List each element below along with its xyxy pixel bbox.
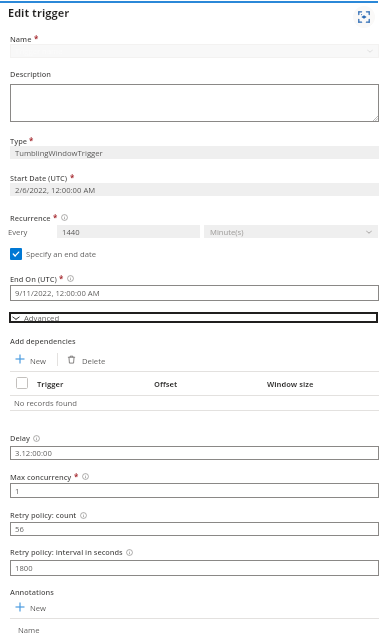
button[interactable]: Advanced [9,312,378,323]
staticText: Delay [10,433,30,443]
staticText: Trigger [37,379,64,389]
staticText: Start Date (UTC) [10,173,68,183]
button[interactable]: New dependency [13,351,47,368]
staticText: * [68,172,75,183]
staticText: * [32,33,39,44]
staticText: 1800 [15,563,33,573]
button[interactable]: 56 [10,522,379,536]
staticText: Type [10,136,27,146]
button[interactable]: 1440 [57,225,200,238]
staticText: TumblingWindowTrigger [15,148,103,158]
staticText: No records found [14,398,78,408]
staticText: Edit trigger [8,5,70,20]
staticText: 56 [15,524,24,534]
staticText: 3.12:00:00 [15,448,52,458]
button[interactable]: 3.12:00:00 [10,446,379,460]
staticText: * [51,212,58,223]
button[interactable]: Specify an end date [10,248,97,260]
button[interactable]: Minute(s) [204,225,378,238]
staticText: Description [10,69,51,79]
staticText: * [72,471,79,482]
button[interactable]: Delete dependency [65,351,110,368]
staticText: Recurrence [10,213,51,223]
staticText: 1 [15,486,20,496]
button[interactable]: 2/6/2022, 12:00:00 AM [10,183,379,196]
staticText: Offset [154,379,178,389]
staticText: 9/11/2022, 12:00:00 AM [15,288,100,298]
staticText: Max concurrency [10,472,72,482]
staticText: * [27,135,34,146]
staticText: 2/6/2022, 12:00:00 AM [15,185,96,195]
staticText: Delete [82,356,106,364]
staticText: Advanced [24,313,60,323]
staticText: Add dependencies [10,336,76,346]
button[interactable] [10,84,379,122]
button[interactable]: 1800 [10,560,379,576]
staticText: Every [8,227,28,237]
button[interactable]: 1 [10,483,379,498]
button[interactable]: Select all [16,377,28,389]
staticText: New [30,603,47,611]
button[interactable]: 9/11/2022, 12:00:00 AM [10,285,379,301]
button[interactable]: Focus [353,6,375,28]
button[interactable]: TumblingWindowTrigger [10,146,379,159]
button[interactable]: New annotation [13,599,47,616]
staticText: End On (UTC) [10,274,57,284]
staticText: Window size [267,379,314,389]
staticText: Name [18,625,40,635]
staticText: Name [10,34,32,44]
staticText: Annotations [10,587,54,597]
staticText: 1440 [62,227,80,237]
staticText: Minute(s) [210,227,244,237]
staticText: Specify an end date [26,249,97,259]
staticText: * [57,273,64,284]
staticText: New [30,356,47,364]
staticText: Retry policy: interval in seconds [10,547,123,557]
staticText: Retry policy: count [10,510,77,520]
